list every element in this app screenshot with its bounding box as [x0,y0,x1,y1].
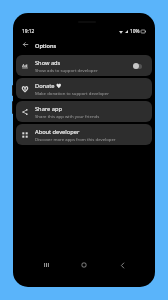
staticText: About developer [35,128,80,136]
staticText: Show ads to support developer [35,67,98,73]
staticText: Make donation to support developer [35,90,109,96]
button[interactable]: Back [18,37,33,52]
button[interactable]: Show ads toggle [133,63,142,69]
staticText: Show ads [35,59,61,67]
button[interactable]: About developer [16,124,152,145]
staticText: Share this app with your friends [35,113,100,119]
button[interactable]: Back [114,257,130,273]
button[interactable]: Donate ♥ [16,78,152,99]
button[interactable]: Share app [16,101,152,122]
button[interactable]: Show ads [16,55,152,76]
staticText: 10% [130,28,140,35]
staticText: Options [35,42,57,50]
staticText: Discover more apps from this developer [35,136,116,142]
staticText: Donate ♥ [35,82,62,90]
button[interactable]: Home [76,257,92,273]
button[interactable]: Recent apps [38,257,54,273]
staticText: Share app [35,105,62,113]
staticText: 19:12 [22,28,35,35]
